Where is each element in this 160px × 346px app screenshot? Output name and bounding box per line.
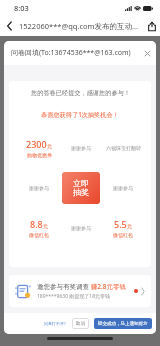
staticText: 元 [47,143,52,149]
staticText: 元 [43,223,48,229]
staticText: 问卷回填(To:13674536***@163.com) [11,48,131,58]
staticText: 立即 抽奖 [73,178,89,198]
staticText: 谢谢参与 [29,185,49,191]
staticText: 189****9630 刚提现了18元零钱 [37,293,111,300]
button[interactable]: Share [143,16,160,36]
staticText: 六福珠宝打翻转 [106,145,141,151]
button[interactable]: 8.8 [19,209,58,246]
button[interactable]: 六福珠宝打翻转 [104,129,142,166]
staticText: 2300 [26,138,47,150]
staticText: 8.8 [30,218,43,230]
staticText: 恭喜您获得了1次抽奖机会！ [41,110,119,118]
button[interactable]: 立即 抽奖 [62,172,100,204]
staticText: 购物优惠券 [27,152,52,158]
staticText: 谢谢参与 [71,225,91,231]
button[interactable]: 谢谢参与 [104,169,142,206]
button[interactable]: 谢谢参与 [62,129,100,166]
staticText: 元 [127,223,132,229]
staticText: 1522060***@qq.com发布的互动... [19,21,143,31]
staticText: 提交成功，马上通知对方 [98,321,148,327]
button[interactable]: Close [138,44,156,62]
button[interactable]: 问卷打不开? [42,318,68,329]
staticText: 谢谢参与 [113,185,133,191]
button[interactable]: 取消 [72,318,89,329]
button[interactable]: 2300 [19,129,58,166]
button[interactable]: 谢谢参与 [62,209,100,246]
button[interactable]: 邀您参与有奖调查 [9,275,151,307]
button[interactable]: 谢谢参与 [19,169,58,206]
staticText: 微信红包 [113,232,133,238]
button[interactable]: 提交成功，马上通知对方 [94,318,152,329]
staticText: 邀您参与有奖调查 [37,283,89,291]
button[interactable]: Back [0,16,19,36]
staticText: 5.5 [114,218,127,230]
staticText: 8:03 [14,3,29,13]
staticText: 赚2.8元零钱 [89,282,126,291]
staticText: 取消 [76,321,85,327]
button[interactable]: 5.5 [104,209,142,246]
staticText: 您的答卷已经提交，感谢您的参与！ [31,89,130,97]
staticText: 谢谢参与 [71,145,91,151]
staticText: 微信红包 [29,232,49,238]
